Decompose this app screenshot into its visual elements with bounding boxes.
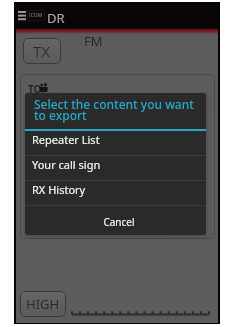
staticText: Repeater List [32, 132, 100, 147]
staticText: DR [47, 9, 65, 27]
staticText: ICOM [29, 12, 43, 19]
staticText: TX [33, 41, 51, 61]
staticText: FM [84, 32, 103, 50]
button[interactable]: Cancel [25, 206, 206, 235]
button[interactable]: HIGH [20, 291, 66, 317]
button[interactable]: Your call sign [25, 156, 206, 180]
staticText: Cancel [103, 215, 135, 229]
staticText: HIGH [26, 295, 60, 313]
staticText: Select the content you want to export [34, 96, 202, 124]
staticText: RX History [32, 182, 86, 197]
button[interactable]: RX History [25, 181, 206, 205]
staticText: TO: [28, 82, 45, 96]
button[interactable]: Repeater List [25, 131, 206, 155]
button[interactable]: Menu [15, 8, 29, 22]
button[interactable]: TX [23, 38, 61, 64]
staticText: Your call sign [32, 157, 101, 172]
